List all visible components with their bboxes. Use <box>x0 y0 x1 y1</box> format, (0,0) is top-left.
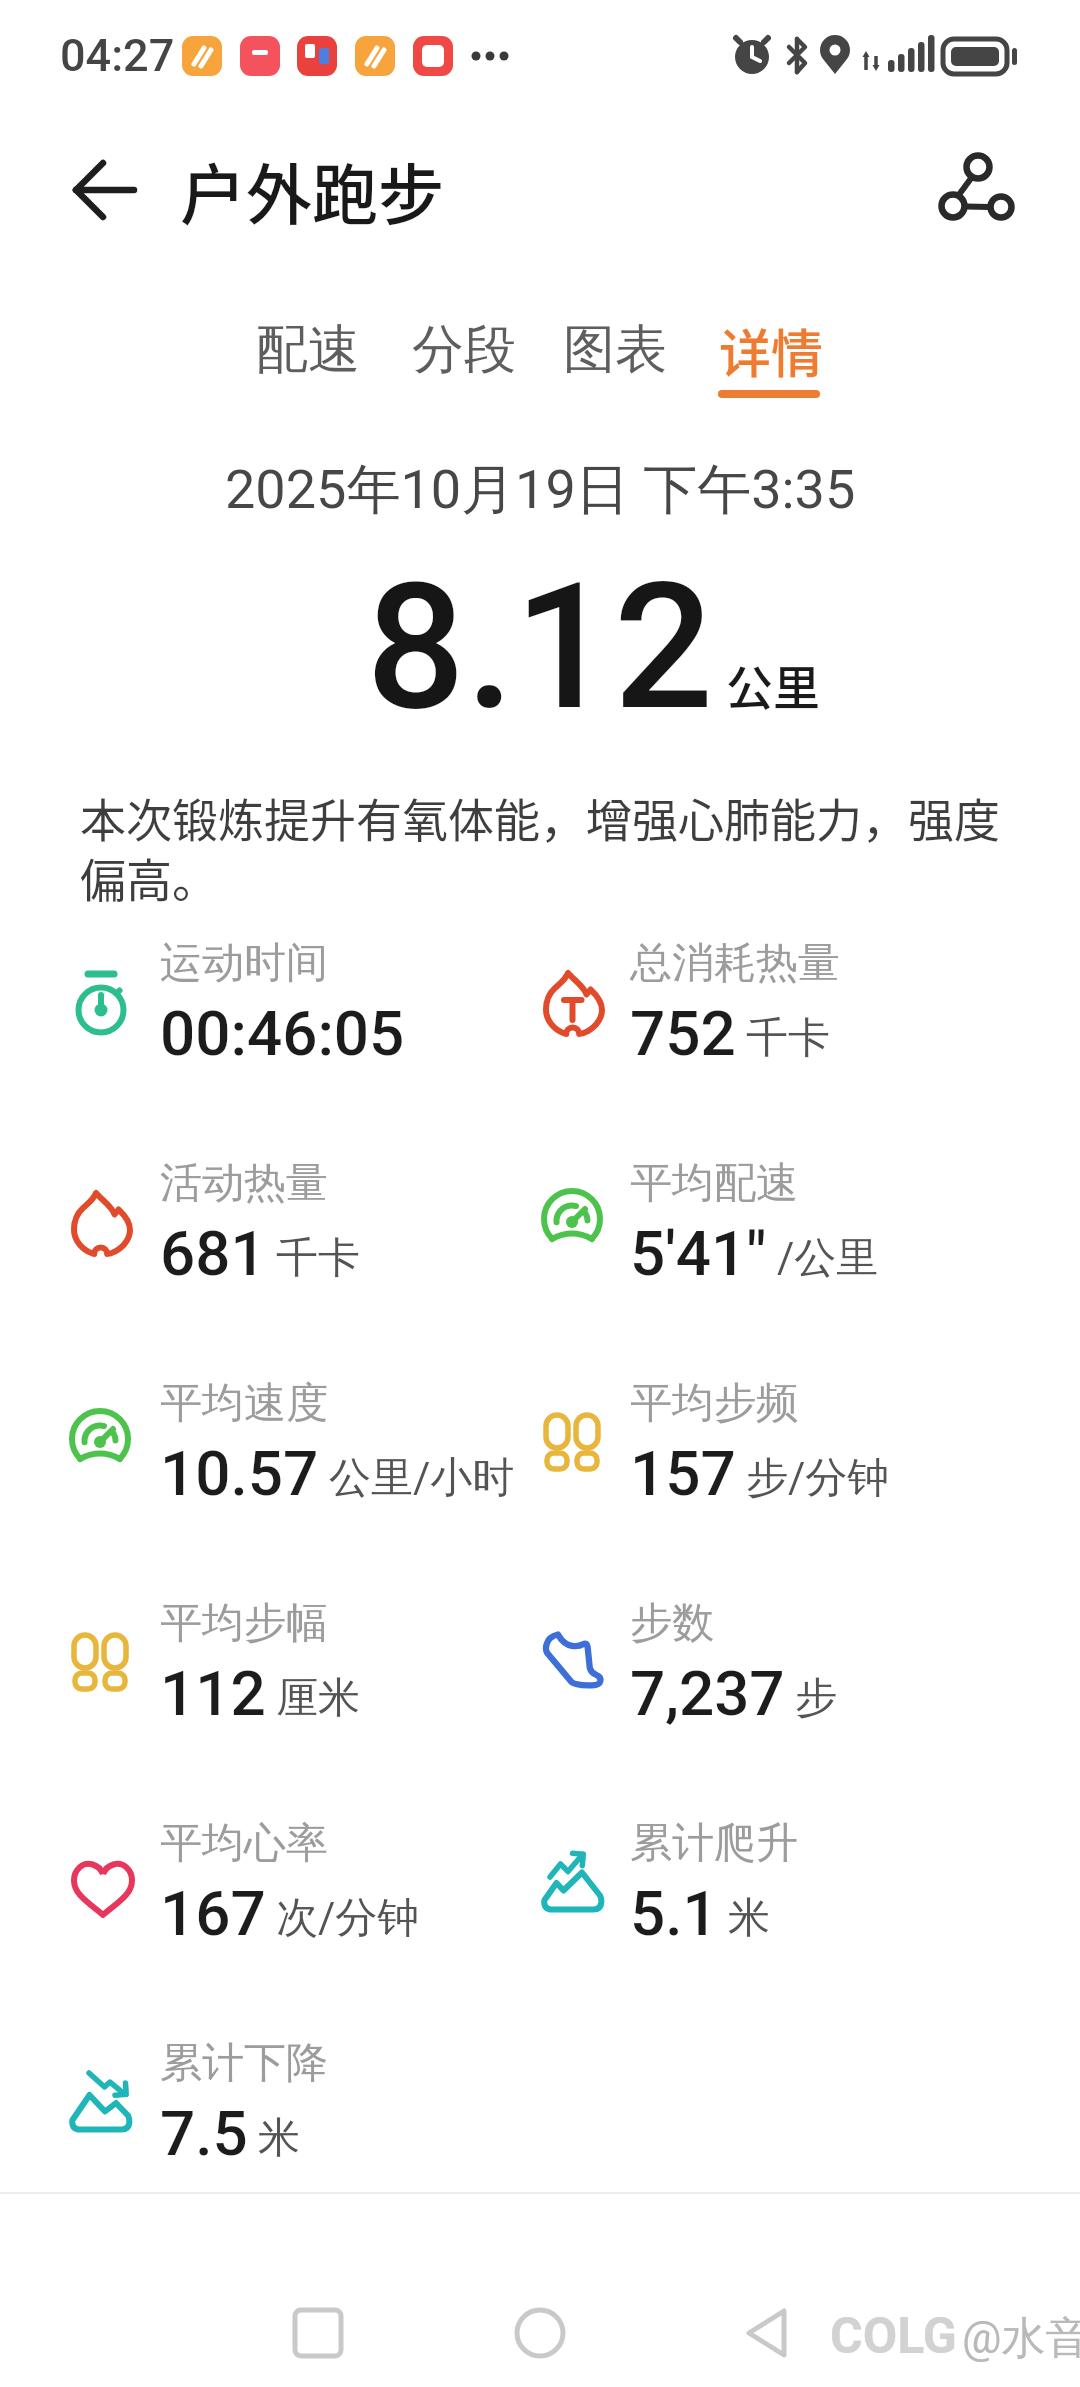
staticText: 04:27 <box>60 29 175 82</box>
button[interactable] <box>935 145 1025 235</box>
staticText: 平均步频 <box>630 1377 798 1430</box>
button[interactable]: 分段 <box>401 310 527 390</box>
staticText: 681 <box>160 1217 266 1290</box>
staticText: 千卡 <box>746 1012 830 1065</box>
button[interactable] <box>60 160 140 220</box>
staticText: 米 <box>258 2112 300 2165</box>
staticText: 图表 <box>563 317 667 383</box>
staticText: 偏高。 <box>80 844 218 911</box>
staticText: 7.5 <box>160 2097 248 2170</box>
staticText: 分段 <box>412 317 516 383</box>
staticText: 752 <box>630 997 736 1070</box>
button[interactable] <box>505 1598 925 1738</box>
button[interactable] <box>33 1598 453 1738</box>
staticText: 米 <box>728 1892 770 1945</box>
button[interactable] <box>33 1158 453 1298</box>
staticText: 累计下降 <box>160 2037 328 2090</box>
staticText: /公里 <box>777 1232 879 1285</box>
staticText: 户外跑步 <box>180 142 444 238</box>
staticText: 步/分钟 <box>746 1452 890 1505</box>
staticText: 7,237 <box>630 1657 785 1730</box>
staticText: 步 <box>795 1672 837 1725</box>
button[interactable] <box>505 1158 925 1298</box>
staticText: 千卡 <box>276 1232 360 1285</box>
staticText: 00:46:05 <box>160 997 405 1070</box>
staticText: 平均心率 <box>160 1817 328 1870</box>
button[interactable]: 配速 <box>245 310 371 390</box>
staticText: 平均速度 <box>160 1377 328 1430</box>
staticText: 5'41" <box>630 1217 767 1290</box>
staticText: 167 <box>160 1877 266 1950</box>
staticText: 5.1 <box>630 1877 718 1950</box>
button[interactable] <box>505 1378 925 1518</box>
staticText: 次/分钟 <box>276 1892 420 1945</box>
button[interactable] <box>270 2285 366 2381</box>
button[interactable] <box>33 1818 453 1958</box>
staticText: 总消耗热量 <box>630 937 840 990</box>
staticText: 公里/小时 <box>329 1452 515 1505</box>
staticText: 本次锻炼提升有氧体能，增强心肺能力，强度 <box>80 784 1000 851</box>
staticText: 157 <box>630 1437 736 1510</box>
staticText: @水音 <box>962 2311 1080 2366</box>
staticText: 公里 <box>726 650 820 718</box>
button[interactable] <box>505 938 925 1078</box>
staticText: COLG <box>830 2307 957 2366</box>
staticText: 112 <box>160 1657 266 1730</box>
button[interactable] <box>33 938 453 1078</box>
staticText: 平均步幅 <box>160 1597 328 1650</box>
staticText: 2025年10月19日 下午3:35 <box>225 456 856 524</box>
button[interactable] <box>33 2038 453 2178</box>
staticText: 运动时间 <box>160 937 328 990</box>
button[interactable]: 图表 <box>552 310 678 390</box>
staticText: 厘米 <box>276 1672 360 1725</box>
staticText: 步数 <box>630 1597 714 1650</box>
staticText: 10.57 <box>160 1437 319 1510</box>
staticText: 平均配速 <box>630 1157 798 1210</box>
staticText: 活动热量 <box>160 1157 328 1210</box>
button[interactable] <box>717 2285 813 2381</box>
staticText: 8.12 <box>366 545 714 740</box>
button[interactable] <box>505 1818 925 1958</box>
staticText: 详情 <box>719 313 824 388</box>
staticText: 配速 <box>256 317 360 383</box>
button[interactable]: 详情 <box>708 310 834 390</box>
button[interactable] <box>33 1378 453 1518</box>
button[interactable] <box>492 2285 588 2381</box>
staticText: 累计爬升 <box>630 1817 798 1870</box>
